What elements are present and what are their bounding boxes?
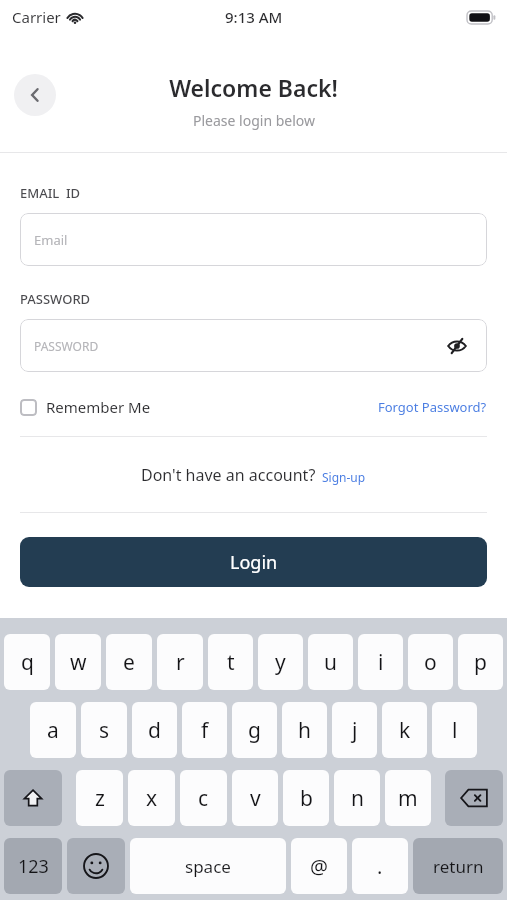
button[interactable]: u [308, 634, 353, 690]
staticText: PASSWORD [20, 290, 91, 308]
staticText: v [250, 784, 261, 813]
button[interactable]: f [182, 702, 227, 758]
staticText: Carrier [12, 7, 61, 27]
button[interactable]: x [128, 770, 175, 826]
button[interactable]: @ [291, 838, 347, 894]
button[interactable]: y [258, 634, 303, 690]
button[interactable]: k [382, 702, 427, 758]
button[interactable]: Email [20, 213, 487, 266]
button[interactable]: v [232, 770, 278, 826]
button[interactable]: p [458, 634, 503, 690]
staticText: t [227, 648, 235, 677]
button[interactable]: Forgot Password? [378, 394, 487, 420]
button[interactable]: Show password [443, 332, 471, 360]
button[interactable]: i [358, 634, 403, 690]
staticText: 123 [18, 854, 49, 879]
button[interactable]: n [334, 770, 380, 826]
staticText: g [248, 716, 261, 745]
button[interactable]: o [408, 634, 453, 690]
button[interactable]: g [232, 702, 277, 758]
staticText: o [424, 648, 437, 677]
staticText: Sign-up [322, 469, 366, 485]
staticText: space [185, 855, 231, 878]
staticText: return [433, 855, 484, 878]
button[interactable]: l [432, 702, 477, 758]
staticText: x [146, 784, 158, 813]
staticText: w [70, 648, 87, 677]
staticText: Email [34, 231, 68, 249]
staticText: n [351, 784, 364, 813]
button[interactable]: t [208, 634, 253, 690]
staticText: PASSWORD [34, 338, 99, 354]
button[interactable]: s [81, 702, 127, 758]
button[interactable]: Login [20, 537, 487, 587]
staticText: h [298, 716, 311, 745]
staticText: r [176, 648, 185, 677]
staticText: Login [230, 550, 278, 575]
button[interactable]: Emoji [67, 838, 125, 894]
button[interactable]: h [282, 702, 327, 758]
staticText: Don't have an account? [141, 464, 316, 486]
staticText: Forgot Password? [378, 398, 487, 416]
button[interactable]: c [180, 770, 227, 826]
button[interactable]: space [130, 838, 286, 894]
button[interactable]: Backspace [445, 770, 503, 826]
staticText: q [21, 648, 34, 677]
button[interactable]: PASSWORD [20, 319, 487, 372]
staticText: s [99, 716, 110, 745]
button[interactable]: return [413, 838, 503, 894]
button[interactable]: a [30, 702, 76, 758]
staticText: m [398, 784, 418, 813]
button[interactable]: Shift [4, 770, 62, 826]
button[interactable]: z [76, 770, 123, 826]
staticText: Remember Me [46, 397, 151, 417]
staticText: Please login below [193, 111, 315, 130]
staticText: Welcome Back! [169, 72, 338, 103]
button[interactable]: Sign-up [322, 470, 366, 486]
staticText: c [198, 784, 209, 813]
button[interactable]: Back [14, 74, 56, 116]
staticText: k [399, 716, 411, 745]
staticText: u [324, 648, 337, 677]
button[interactable]: Remember Me [20, 393, 151, 421]
staticText: i [378, 648, 384, 677]
staticText: a [47, 716, 59, 745]
button[interactable]: . [352, 838, 408, 894]
staticText: EMAIL ID [20, 184, 81, 202]
button[interactable]: w [55, 634, 101, 690]
staticText: p [474, 648, 487, 677]
button[interactable]: e [106, 634, 152, 690]
button[interactable]: r [157, 634, 203, 690]
staticText: z [95, 784, 105, 813]
staticText: l [452, 716, 458, 745]
button[interactable]: q [4, 634, 50, 690]
button[interactable]: d [132, 702, 177, 758]
staticText: f [201, 716, 209, 745]
button[interactable]: j [332, 702, 377, 758]
staticText: y [275, 648, 286, 677]
staticText: b [300, 784, 313, 813]
staticText: j [352, 716, 358, 745]
button[interactable]: b [283, 770, 329, 826]
staticText: e [123, 648, 135, 677]
staticText: @ [310, 853, 328, 880]
staticText: d [148, 716, 161, 745]
button[interactable]: m [385, 770, 431, 826]
staticText: . [377, 853, 383, 880]
button[interactable]: 123 [4, 838, 62, 894]
staticText: 9:13 AM [225, 7, 283, 27]
